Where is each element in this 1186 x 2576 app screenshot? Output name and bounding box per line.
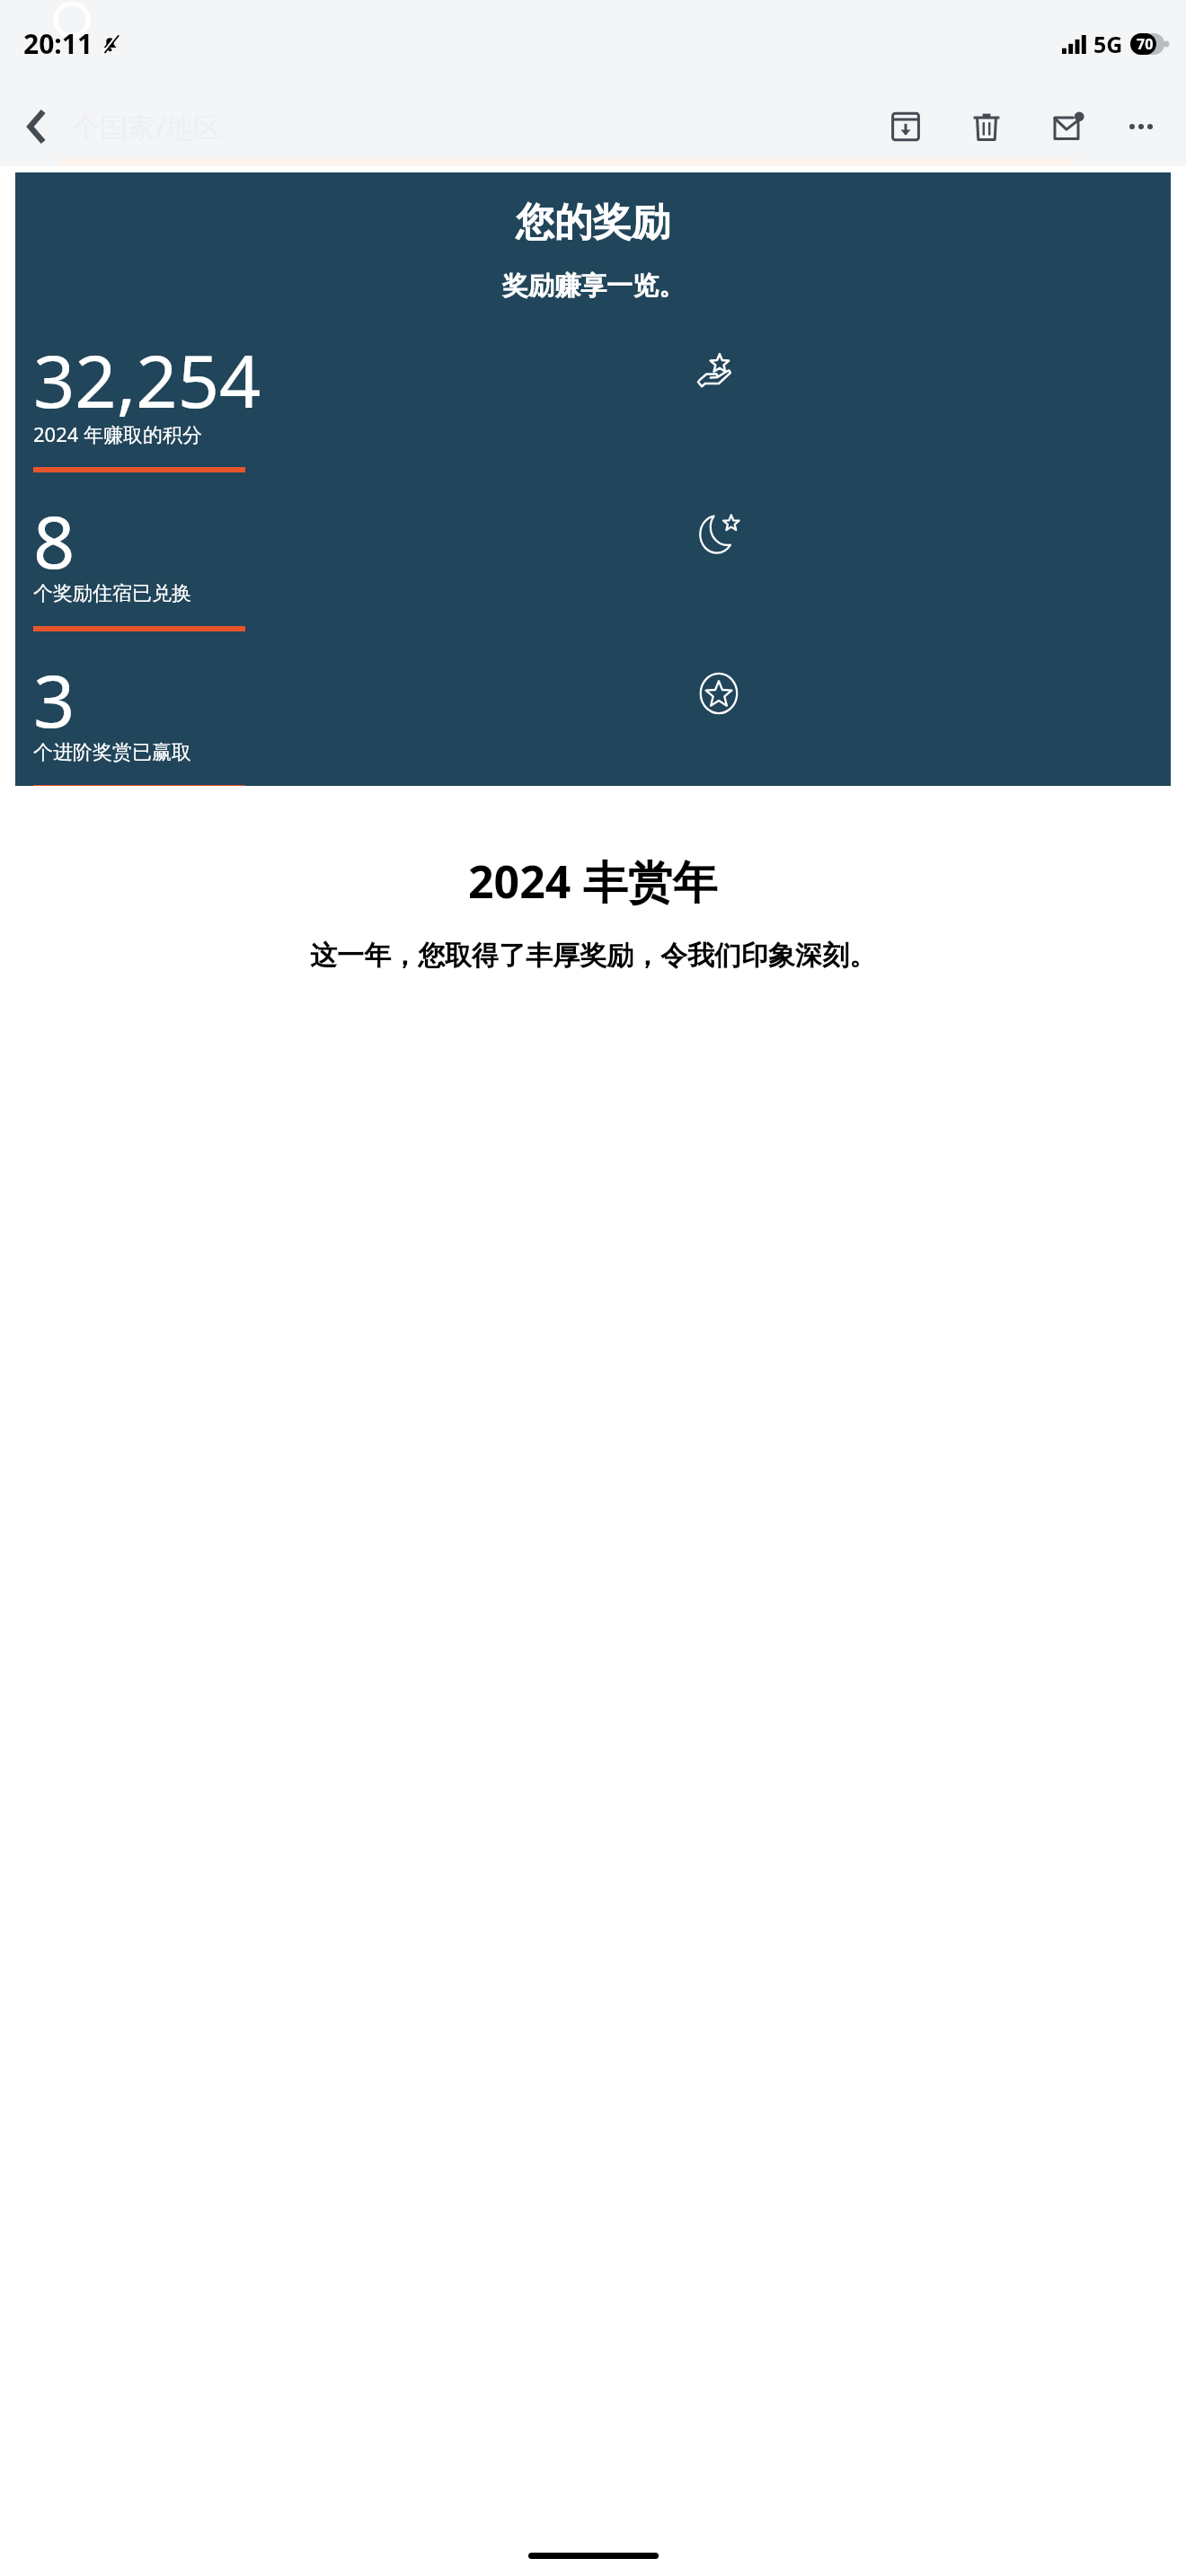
button[interactable]: Archive bbox=[873, 94, 938, 159]
staticText: 3 bbox=[33, 649, 75, 737]
staticText: 20:11 bbox=[23, 25, 93, 62]
staticText: 5G bbox=[1093, 29, 1123, 59]
staticText: 8 bbox=[33, 490, 75, 578]
staticText: 您的奖励 bbox=[516, 198, 670, 247]
staticText: 2024 丰赏年 bbox=[468, 851, 718, 912]
button[interactable]: Mark unread bbox=[1035, 94, 1100, 159]
button[interactable]: Back bbox=[9, 98, 66, 155]
button[interactable]: Delete bbox=[954, 94, 1019, 159]
staticText: 这一年，您取得了丰厚奖励，令我们印象深刻。 bbox=[31, 939, 1155, 973]
button[interactable]: More options bbox=[1109, 94, 1173, 159]
staticText: 70 bbox=[1137, 34, 1154, 54]
staticText: 奖励赚享一览。 bbox=[502, 269, 685, 303]
staticText: 个奖励住宿已兑换 bbox=[33, 581, 191, 606]
staticText: 32,254 bbox=[33, 330, 261, 417]
staticText: 个进阶奖赏已赢取 bbox=[33, 740, 191, 765]
staticText: 2024 年赚取的积分 bbox=[33, 420, 203, 447]
